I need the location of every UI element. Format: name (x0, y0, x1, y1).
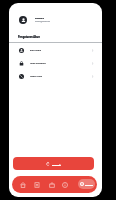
staticText: Ubah Password (30, 62, 46, 65)
staticText: Hapus Akun (30, 75, 43, 78)
staticText: Ubah Password (30, 62, 46, 65)
staticText: Profile (85, 183, 93, 186)
staticText: Pengaturan Akun (18, 35, 40, 38)
button[interactable]: Info (60, 180, 69, 189)
staticText: sudarto@gmail.com (35, 20, 51, 22)
staticText: Pengaturan Akun (18, 35, 40, 38)
staticText: Logout (52, 163, 61, 166)
staticText: Profile (85, 183, 93, 186)
staticText: Profile (85, 183, 93, 186)
staticText: sudarto@gmail.com (35, 20, 51, 22)
staticText: Edit Profile (30, 49, 41, 52)
staticText: Logout (52, 163, 61, 166)
staticText: Edit Profile (30, 49, 41, 52)
button[interactable]: Logout (13, 157, 94, 170)
button[interactable]: Bag (47, 180, 56, 189)
button[interactable]: Hapus Akun (9, 70, 102, 83)
staticText: Hapus Akun (30, 75, 43, 78)
button[interactable]: Edit Profile (9, 44, 102, 57)
button[interactable]: SUDARTO (9, 14, 102, 25)
staticText: SUDARTO (35, 17, 44, 20)
staticText: SUDARTO (35, 17, 44, 20)
button[interactable]: Documents (32, 180, 41, 189)
staticText: Ubah Password (30, 62, 46, 65)
staticText: Pengaturan Akun (18, 35, 40, 38)
staticText: Hapus Akun (30, 75, 43, 78)
staticText: Edit Profile (30, 49, 41, 52)
button[interactable]: Ubah Password (9, 57, 102, 70)
staticText: Logout (52, 163, 61, 166)
button[interactable]: Profile (78, 179, 95, 189)
staticText: sudarto@gmail.com (35, 20, 51, 22)
button[interactable]: Home (18, 180, 27, 189)
staticText: SUDARTO (35, 17, 44, 20)
